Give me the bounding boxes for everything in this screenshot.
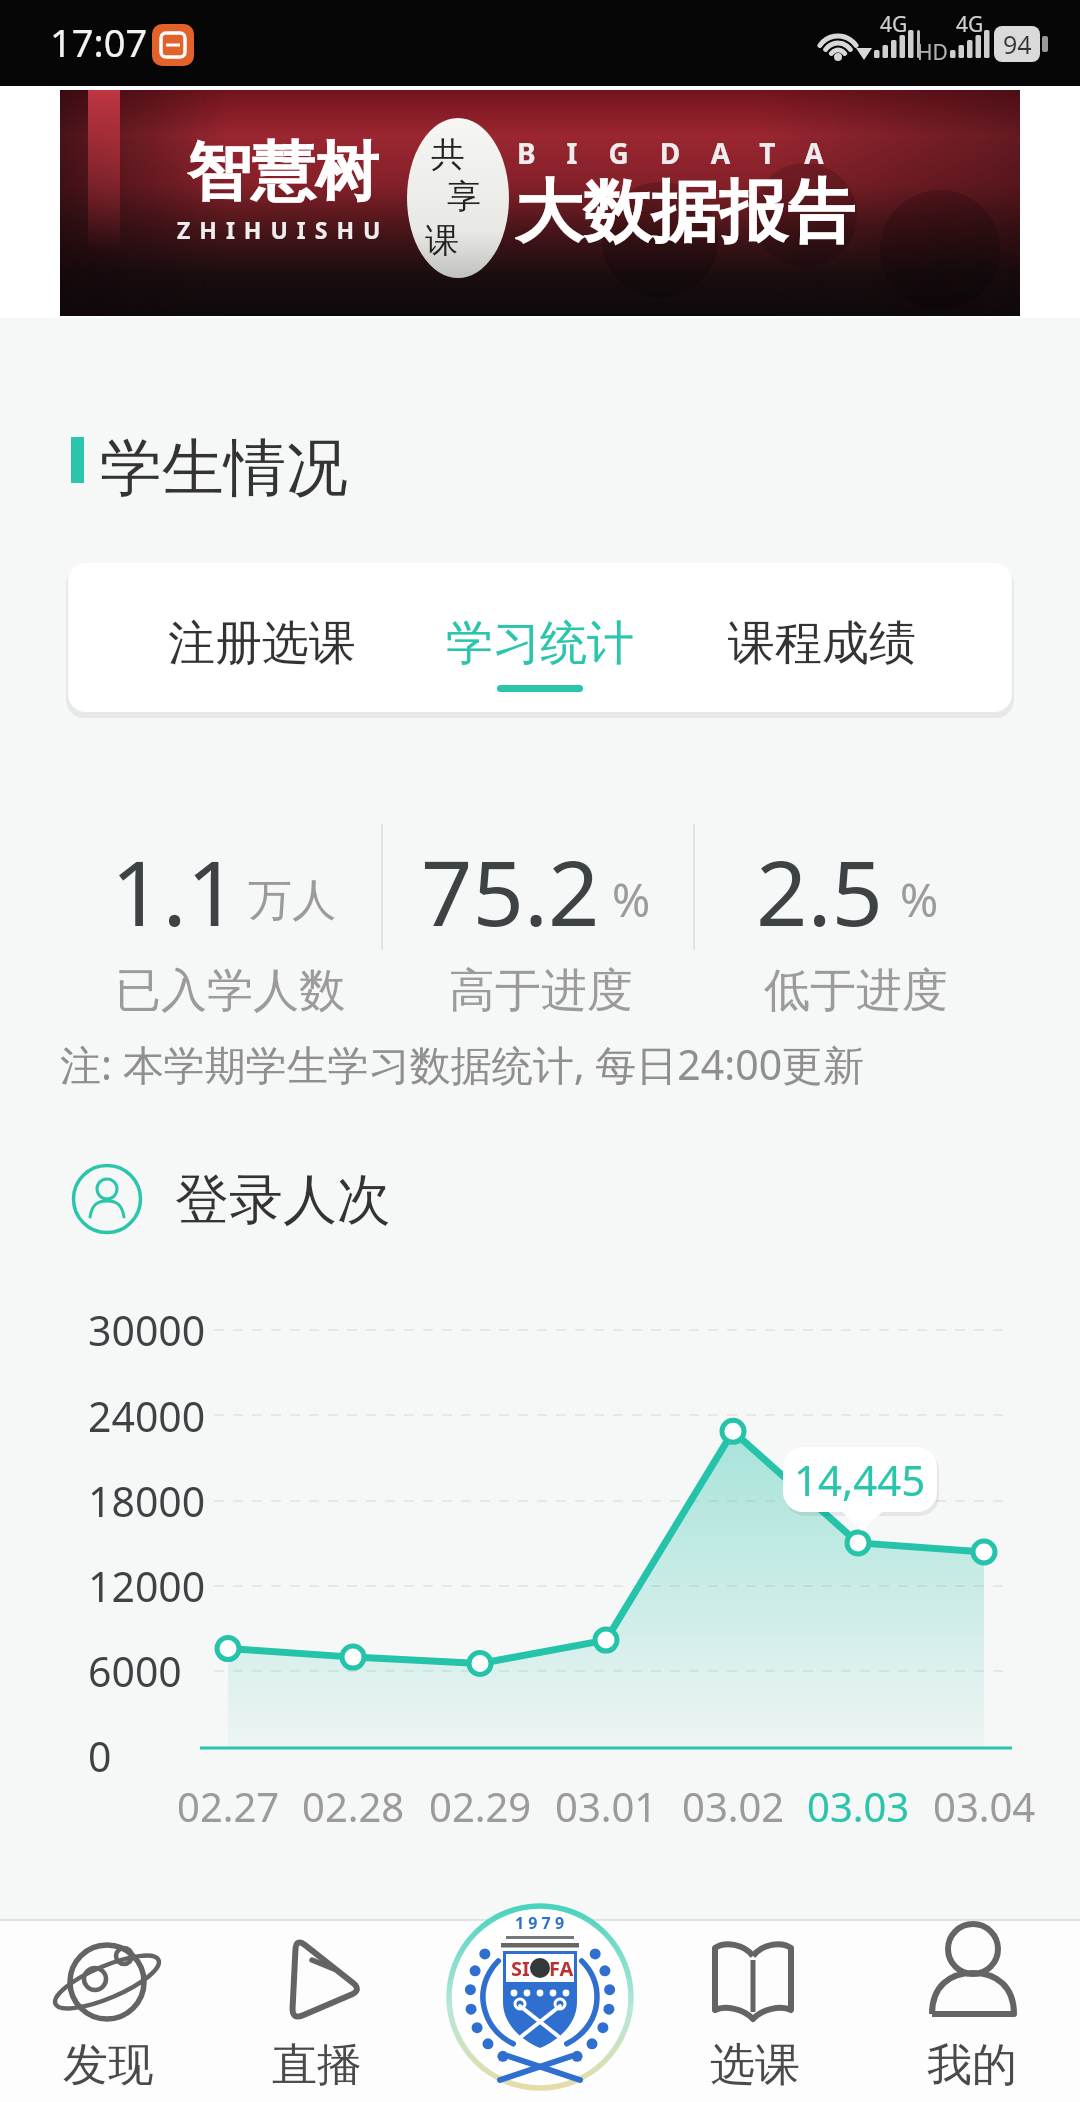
- staticText: 24000: [88, 1388, 206, 1444]
- button[interactable]: [68, 563, 383, 712]
- button[interactable]: 智慧树: [60, 90, 1020, 316]
- staticText: 03.02: [682, 1779, 785, 1833]
- staticText: BIGDATA: [517, 134, 855, 170]
- staticText: 登录人次: [175, 1166, 391, 1234]
- staticText: 12000: [88, 1558, 206, 1614]
- staticText: 已入学人数: [115, 962, 345, 1018]
- staticText: 02.29: [429, 1779, 532, 1833]
- staticText: 共: [431, 133, 465, 176]
- staticText: 03.04: [933, 1779, 1036, 1833]
- button[interactable]: [688, 1925, 828, 2100]
- staticText: %: [900, 868, 939, 924]
- staticText: 03.03: [807, 1779, 910, 1833]
- staticText: 学习统计: [446, 614, 634, 673]
- staticText: 1.1: [111, 830, 239, 935]
- staticText: 直播: [272, 2037, 362, 2094]
- staticText: 万人: [248, 873, 336, 928]
- staticText: 发现: [63, 2037, 153, 2094]
- staticText: 14,445: [794, 1451, 926, 1508]
- staticText: %: [612, 868, 651, 924]
- button[interactable]: [40, 1925, 180, 2100]
- staticText: 1 9 7 9: [515, 1912, 565, 1934]
- staticText: 02.28: [302, 1779, 405, 1833]
- staticText: 课程成绩: [728, 614, 916, 673]
- staticText: 94: [1003, 27, 1032, 61]
- button[interactable]: [698, 563, 1012, 712]
- staticText: 享: [447, 175, 481, 218]
- button[interactable]: [250, 1925, 390, 2100]
- staticText: HD: [917, 38, 948, 62]
- staticText: 75.2: [421, 830, 600, 935]
- staticText: 我的: [927, 2037, 1017, 2094]
- staticText: 学生情况: [100, 429, 348, 503]
- staticText: 6000: [88, 1643, 182, 1699]
- staticText: 高于进度: [449, 962, 633, 1018]
- staticText: 4G: [880, 10, 908, 36]
- staticText: 0: [88, 1728, 112, 1784]
- staticText: FA: [549, 1955, 574, 1982]
- staticText: 02.27: [177, 1779, 280, 1833]
- button[interactable]: [448, 1903, 632, 2093]
- staticText: 30000: [88, 1302, 206, 1358]
- staticText: 03.01: [555, 1779, 658, 1833]
- staticText: 注册选课: [168, 614, 356, 673]
- staticText: SI: [511, 1955, 530, 1982]
- staticText: 4G: [956, 10, 984, 36]
- staticText: ZHIHUISHU: [177, 214, 390, 245]
- staticText: 大数据报告: [515, 170, 855, 248]
- staticText: 低于进度: [764, 962, 948, 1018]
- button[interactable]: [383, 563, 698, 712]
- staticText: 智慧树: [187, 132, 379, 210]
- staticText: 注: 本学期学生学习数据统计, 每日24:00更新: [60, 1036, 865, 1092]
- staticText: 2.5: [756, 830, 884, 935]
- staticText: 18000: [88, 1473, 206, 1529]
- staticText: 17:07: [50, 16, 148, 68]
- staticText: 课: [425, 219, 459, 262]
- staticText: 选课: [710, 2037, 800, 2094]
- button[interactable]: [905, 1925, 1045, 2100]
